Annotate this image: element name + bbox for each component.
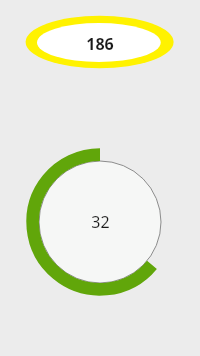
staticText: 186 — [86, 33, 114, 55]
button[interactable]: 32 — [39, 161, 161, 283]
staticText: 32 — [91, 211, 110, 233]
button[interactable]: 186 — [26, 18, 174, 70]
